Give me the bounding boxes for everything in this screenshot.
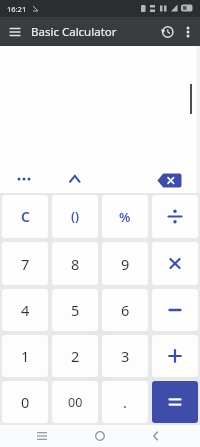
button[interactable]: %	[102, 195, 148, 238]
staticText: 4	[21, 300, 30, 320]
staticText: 7	[21, 254, 30, 274]
staticText: 16:21	[7, 4, 27, 14]
staticText: C	[21, 207, 30, 226]
staticText: %	[119, 208, 131, 226]
button[interactable]: 8	[52, 242, 98, 285]
staticText: 1	[21, 346, 30, 366]
staticText: 3	[121, 346, 130, 366]
button[interactable]: 2	[52, 335, 98, 377]
button[interactable]	[156, 172, 183, 189]
button[interactable]: 00	[52, 381, 98, 423]
staticText: 5	[71, 300, 80, 320]
button[interactable]: 3	[102, 335, 148, 377]
button[interactable]	[152, 289, 198, 331]
staticText: .	[123, 392, 127, 412]
button[interactable]: 7	[2, 242, 48, 285]
button[interactable]	[6, 23, 24, 41]
button[interactable]	[92, 428, 108, 444]
button[interactable]	[34, 428, 50, 444]
button[interactable]	[152, 195, 198, 238]
staticText: 8	[71, 254, 80, 274]
button[interactable]: .	[102, 381, 148, 423]
button[interactable]: 9	[102, 242, 148, 285]
button[interactable]: C	[2, 195, 48, 238]
button[interactable]: 6	[102, 289, 148, 331]
staticText: 0	[21, 392, 30, 412]
button[interactable]	[152, 242, 198, 285]
staticText: 2	[71, 346, 80, 366]
staticText: 9	[121, 254, 130, 274]
button[interactable]	[152, 335, 198, 377]
button[interactable]	[158, 23, 176, 41]
staticText: 6	[121, 300, 130, 320]
button[interactable]	[14, 170, 38, 188]
button[interactable]: 1	[2, 335, 48, 377]
button[interactable]: 0	[2, 381, 48, 423]
button[interactable]	[152, 381, 198, 423]
button[interactable]: ()	[52, 195, 98, 238]
button[interactable]: 4	[2, 289, 48, 331]
button[interactable]	[181, 25, 195, 39]
button[interactable]	[148, 428, 164, 444]
staticText: Basic Calculator	[31, 24, 117, 40]
button[interactable]	[66, 170, 84, 188]
button[interactable]: 5	[52, 289, 98, 331]
staticText: 00	[68, 394, 83, 411]
staticText: ()	[71, 208, 80, 225]
